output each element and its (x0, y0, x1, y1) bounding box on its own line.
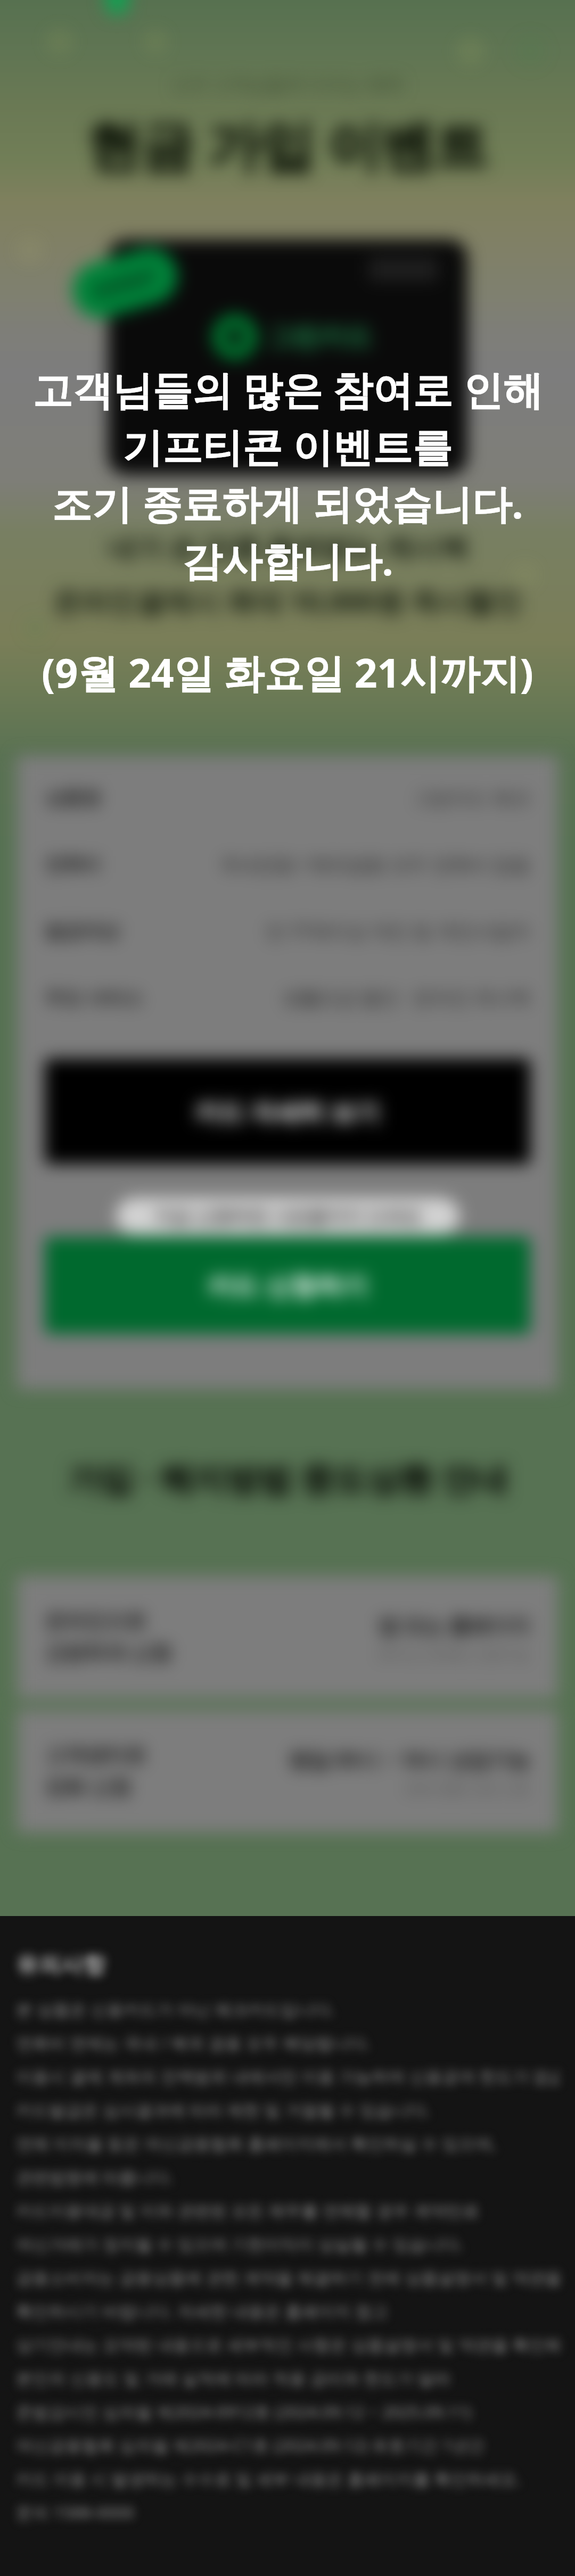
button[interactable]: 카드 자세히 보기 (45, 1059, 530, 1164)
staticText: 발급대상 (45, 919, 119, 943)
staticText: 고객센터로 (45, 1743, 146, 1768)
staticText: 앱 또는 홈페이지 (378, 1611, 530, 1639)
staticText: 카드 자세히 보기 (195, 1095, 380, 1128)
staticText: 카드발급은 심사결과에 따라 제한 및 거절될 수 있습니다. (16, 2099, 430, 2121)
button[interactable]: 카드 신청하기 (45, 1237, 530, 1334)
staticText: 그린카드 (266, 320, 373, 354)
staticText: 가입 · 해지방법 중도상환 안내 (68, 1456, 508, 1498)
staticText: 온라인결제시 최대 10,000원 즉시할인 (53, 582, 522, 620)
staticText: 여신금융협회 심의필 제2024-C1호 (2024.09.12) 유효기간 1… (16, 2434, 485, 2456)
staticText: (9월 24일 화요일 21시까지) (42, 645, 533, 699)
staticText: 그린카드 체크 (413, 785, 530, 811)
staticText: 조기 종료하게 되었습니다. (52, 476, 523, 530)
staticText: 연회비 (45, 853, 101, 876)
staticText: 본인의 신용도 및 거래 실적에 따라 적용 금리와 한도가 달라 (16, 2367, 451, 2389)
staticText: 연체 이자율 등은 여신금융협회 홈페이지에서 확인하실 수 있으며, (16, 2132, 496, 2154)
staticText: 생활요금 할인 · 온라인 캐시백 (282, 985, 530, 1010)
staticText: 온라인으로 (45, 1608, 146, 1634)
staticText: 평일 09시 ~ 18시 상담가능 (289, 1745, 530, 1773)
staticText: 이용시 결제 계좌의 잔액범위 내에서만 이용 가능하며 신용공여 한도가 없습… (16, 2065, 559, 2087)
staticText: 여신거래가 정지될 수 있으며 기한이익이 상실될 수 있습니다. (16, 2233, 463, 2255)
staticText: 현금 가입 이벤트 (87, 108, 488, 181)
staticText: 준법감시인 심의필 제2024-0912호 (2024.09.12 ~ 2025… (16, 2400, 472, 2423)
staticText: 카드 신청하기 (208, 1268, 368, 1303)
staticText: 연회비 면제는 국내 / 해외 겸용 모두 해당됩니다. (16, 2032, 371, 2054)
staticText: 카드이용대금 및 이와 관련된 모든 채무를 연체할 경우 계약만료 (16, 2199, 480, 2222)
staticText: 지금 신청하면 사은품까지 드려요 (154, 1204, 422, 1228)
staticText: 주요 서비스 (45, 985, 143, 1010)
staticText: 상기안내는 요약된 내용으로 세부적인 사항은 상품설명서 및 약관을 확인해 … (16, 2333, 559, 2356)
staticText: 감사합니다. (182, 533, 393, 587)
staticText: EVENT (90, 261, 161, 305)
staticText: 고객님들의 많은 참여로 인해 (32, 362, 543, 416)
staticText: 내가 쓴 만큼 돌려받는 캐시백 (107, 528, 469, 566)
staticText: 금융소비자는 금융상품에 관한 계약을 체결하기 전에 상품설명서 및 약관을 … (16, 2266, 559, 2289)
staticText: 문의 1588-0000 (16, 2501, 134, 2523)
staticText: 만 17세이상 개인 및 개인사업자 (266, 918, 530, 944)
staticText: 간편하게 신청 (45, 1638, 171, 1666)
staticText: 본 상품은 신용카드가 아닌 체크카드입니다. (16, 1998, 335, 2020)
staticText: 전화 신청 (45, 1772, 131, 1800)
staticText: 카드 이용 시 발생하는 수수료 및 세부 내용은 홈페이지를 확인하세요. (16, 2467, 521, 2490)
staticText: 국내전용 / 해외겸용 모두 연회비 없음 (219, 852, 530, 877)
staticText: 상품명 (45, 786, 101, 810)
staticText: 기프티콘 이벤트를 (122, 419, 453, 473)
staticText: 유의사항 (16, 1951, 105, 1979)
staticText: 관련법령에 따릅니다. (16, 2166, 174, 2188)
staticText: 확인하시기 바랍니다. 자세한 내용은 홈페이지 참고 (16, 2300, 389, 2322)
